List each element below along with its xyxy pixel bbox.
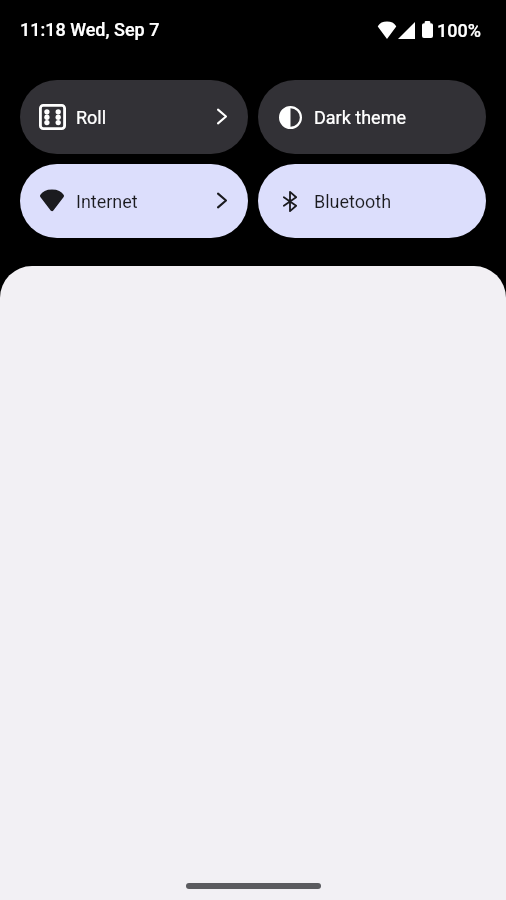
staticText: Bluetooth: [314, 191, 392, 212]
button[interactable]: Bluetooth: [258, 164, 486, 238]
button[interactable]: Internet: [20, 164, 248, 238]
staticText: Roll: [76, 107, 107, 128]
staticText: Internet: [76, 191, 138, 212]
staticText: Dark theme: [314, 107, 406, 128]
staticText: 100%: [437, 20, 481, 41]
button[interactable]: Dark theme: [258, 80, 486, 154]
staticText: 11:18 Wed, Sep 7: [20, 19, 160, 40]
button[interactable]: Open Roll settings: [216, 108, 228, 125]
button[interactable]: Open Internet settings: [216, 192, 228, 209]
button[interactable]: Roll: [20, 80, 248, 154]
